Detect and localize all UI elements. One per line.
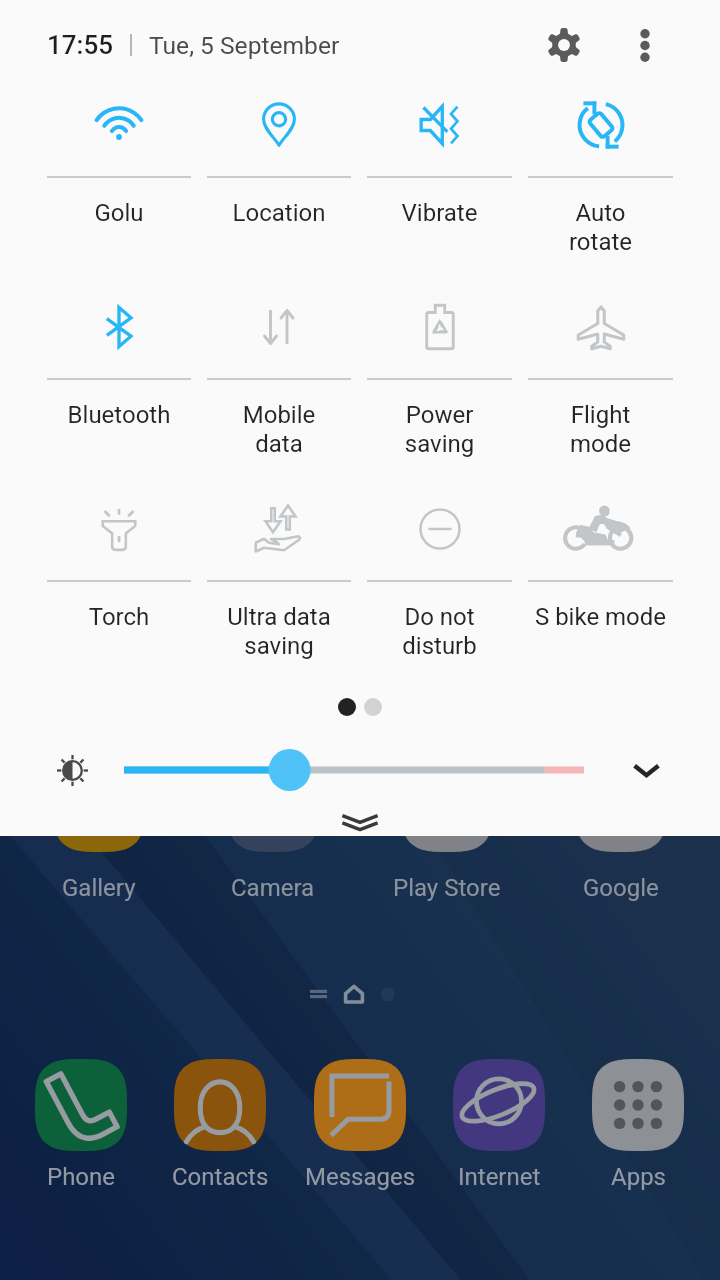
button[interactable]: Vibrate — [367, 86, 512, 227]
staticText: Internet — [458, 1163, 541, 1191]
staticText: Mobile data — [207, 401, 351, 458]
button[interactable]: Ultra data saving — [207, 490, 351, 660]
staticText: Ultra data saving — [207, 603, 351, 660]
button[interactable]: Do not disturb — [367, 490, 512, 660]
button[interactable]: Mobile data — [207, 288, 351, 458]
staticText: Tue, 5 September — [149, 31, 340, 60]
staticText: Torch — [47, 603, 191, 631]
staticText: Do not disturb — [367, 603, 512, 660]
button[interactable]: More options — [615, 15, 675, 75]
button[interactable]: Collapse panel — [300, 804, 420, 840]
staticText: Contacts — [172, 1163, 269, 1191]
button[interactable]: Settings — [534, 15, 594, 75]
button[interactable]: S bike mode — [528, 490, 673, 631]
button[interactable]: Golu — [47, 86, 191, 227]
button[interactable]: Flight mode — [528, 288, 673, 458]
button[interactable] — [314, 1059, 406, 1151]
button[interactable] — [453, 1059, 545, 1151]
button[interactable]: Power saving — [367, 288, 512, 458]
staticText: Vibrate — [367, 199, 512, 227]
button[interactable] — [575, 760, 667, 852]
staticText: Power saving — [367, 401, 512, 458]
staticText: Auto rotate — [528, 199, 673, 256]
staticText: Flight mode — [528, 401, 673, 458]
button[interactable]: Location — [207, 86, 351, 227]
button[interactable] — [53, 760, 145, 852]
staticText: Apps — [611, 1163, 666, 1191]
button[interactable]: Bluetooth — [47, 288, 191, 429]
button[interactable] — [401, 760, 493, 852]
staticText: Gallery — [62, 874, 136, 902]
button[interactable]: Auto rotate — [528, 86, 673, 256]
staticText: Golu — [47, 199, 191, 227]
button[interactable] — [592, 1059, 684, 1151]
button[interactable] — [174, 1059, 266, 1151]
staticText: Bluetooth — [47, 401, 191, 429]
staticText: 17:55 — [47, 30, 113, 60]
button[interactable]: Torch — [47, 490, 191, 631]
staticText: S bike mode — [528, 603, 673, 631]
staticText: Location — [207, 199, 351, 227]
staticText: Phone — [47, 1163, 116, 1191]
staticText: Google — [583, 874, 659, 902]
button[interactable] — [35, 1059, 127, 1151]
staticText: Messages — [305, 1163, 416, 1191]
button[interactable]: Expand brightness settings — [613, 740, 679, 800]
staticText: Camera — [231, 874, 315, 902]
button[interactable] — [227, 760, 319, 852]
staticText: Play Store — [393, 874, 501, 902]
